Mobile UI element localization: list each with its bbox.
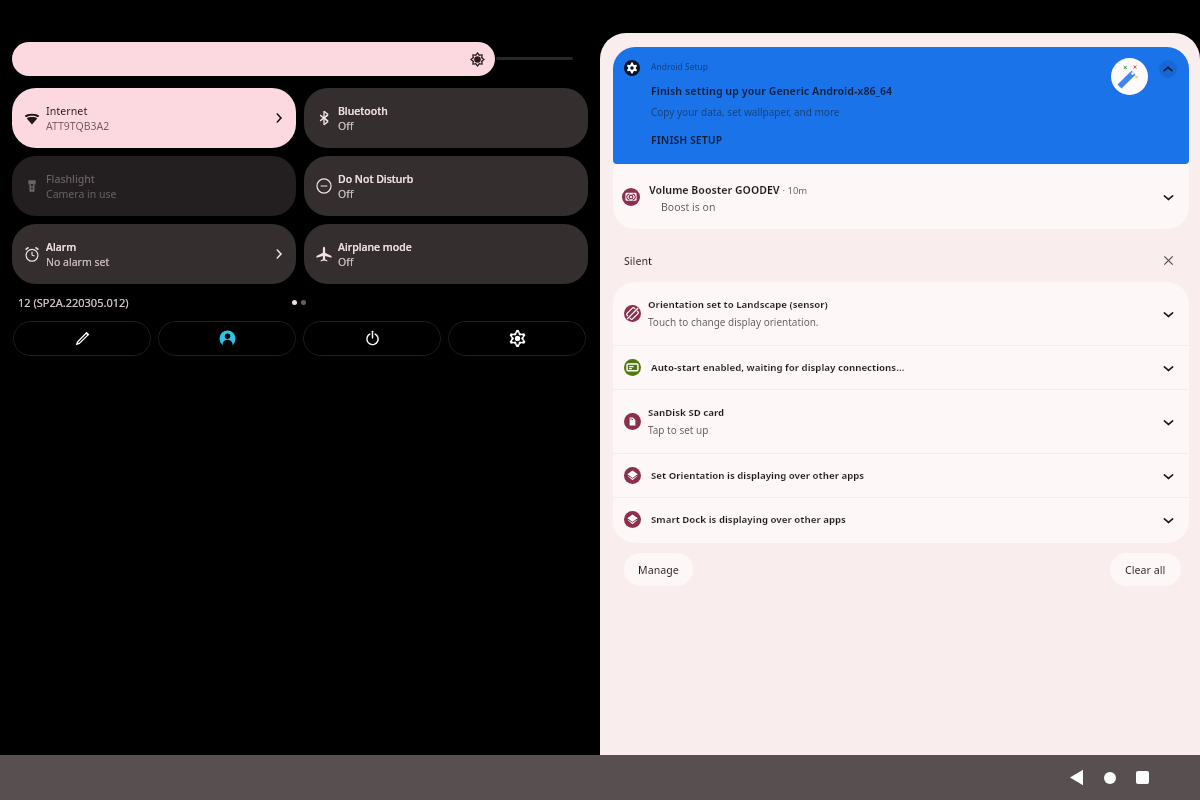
staticText: Tap to set up	[648, 423, 709, 437]
button[interactable]: Orientation set to Landscape (sensor)	[613, 282, 1189, 345]
staticText: · 10m	[780, 184, 808, 197]
staticText: Smart Dock is displaying over other apps	[651, 513, 846, 526]
staticText: Bluetooth	[338, 104, 388, 118]
staticText: Boost is on	[661, 200, 716, 214]
button[interactable]: Clear all	[1110, 553, 1181, 586]
staticText: Set Orientation is displaying over other…	[651, 469, 865, 482]
button[interactable]: Power	[303, 321, 441, 356]
staticText: Off	[338, 187, 354, 201]
staticText: No alarm set	[46, 255, 110, 269]
button[interactable]: Collapse	[1159, 60, 1177, 78]
button[interactable]: Do Not Disturb	[304, 156, 588, 216]
button[interactable]: Android Setup	[613, 47, 1189, 164]
staticText: Airplane mode	[338, 240, 412, 254]
button[interactable]: Alarm	[12, 224, 296, 284]
button[interactable]: Airplane mode	[304, 224, 588, 284]
button[interactable]: FINISH SETUP	[643, 128, 731, 152]
staticText: Manage	[638, 563, 679, 577]
staticText: SanDisk SD card	[648, 406, 725, 419]
staticText: Internet	[46, 104, 88, 118]
button[interactable]: Auto-start enabled, waiting for display …	[613, 346, 1189, 389]
button[interactable]: Back	[1060, 755, 1093, 800]
button[interactable]: Smart Dock is displaying over other apps	[613, 498, 1189, 541]
staticText: Clear all	[1125, 563, 1166, 577]
button[interactable]: Flashlight	[12, 156, 296, 216]
button[interactable]: Bluetooth	[304, 88, 588, 148]
button[interactable]: Expand	[1156, 185, 1181, 210]
button[interactable]: Brightness	[12, 42, 495, 76]
staticText: Auto-start enabled, waiting for display …	[651, 361, 905, 374]
staticText: Volume Booster GOODEV	[649, 183, 780, 197]
button[interactable]: Expand notification	[1155, 355, 1181, 381]
button[interactable]: Recent apps	[1126, 755, 1159, 800]
button[interactable]: SanDisk SD card	[613, 390, 1189, 453]
staticText: Android Setup	[651, 61, 709, 73]
staticText: FINISH SETUP	[651, 133, 723, 147]
button[interactable]: Manage	[624, 553, 693, 586]
staticText: 12 (SP2A.220305.012)	[18, 295, 129, 310]
button[interactable]: Expand notification	[1155, 507, 1181, 533]
staticText: Touch to change display orientation.	[648, 315, 819, 329]
staticText: Off	[338, 119, 354, 133]
button[interactable]: User	[158, 321, 296, 356]
staticText: Copy your data, set wallpaper, and more	[651, 105, 840, 119]
staticText: ATT9TQB3A2	[46, 119, 110, 133]
button[interactable]: Expand notification	[1155, 301, 1181, 327]
button[interactable]: Home	[1093, 755, 1126, 800]
staticText: Orientation set to Landscape (sensor)	[648, 298, 828, 311]
staticText: Camera in use	[46, 187, 117, 201]
button[interactable]: Clear silent notifications	[1155, 247, 1181, 273]
staticText: Finish setting up your Generic Android-x…	[651, 84, 893, 98]
button[interactable]: Expand notification	[1155, 409, 1181, 435]
button[interactable]: Set Orientation is displaying over other…	[613, 454, 1189, 497]
staticText: Do Not Disturb	[338, 172, 414, 186]
staticText: Off	[338, 255, 354, 269]
button[interactable]: Volume Booster GOODEV	[613, 165, 1189, 229]
button[interactable]: Settings	[448, 321, 586, 356]
button[interactable]: Suggestions	[1111, 58, 1148, 95]
button[interactable]: Internet	[12, 88, 296, 148]
button[interactable]: Expand notification	[1155, 463, 1181, 489]
staticText: Flashlight	[46, 172, 95, 186]
button[interactable]: Edit tiles	[13, 321, 151, 356]
staticText: Alarm	[46, 240, 77, 254]
staticText: Silent	[624, 254, 653, 268]
